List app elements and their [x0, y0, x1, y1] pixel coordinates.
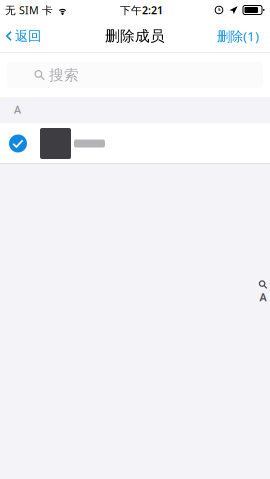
button[interactable]: 返回 [0, 20, 49, 52]
staticText: 下午2:21 [120, 3, 163, 17]
staticText: A [14, 102, 21, 117]
button[interactable]: A [257, 293, 269, 301]
button[interactable]: 搜索 [7, 62, 263, 88]
staticText: 删除(1) [217, 27, 259, 45]
staticText: 删除成员 [105, 27, 165, 45]
button[interactable] [0, 123, 270, 163]
staticText: 返回 [15, 28, 41, 44]
button[interactable]: Search index [257, 280, 269, 289]
staticText: 搜索 [49, 66, 79, 84]
staticText: 无 SIM 卡 [5, 3, 53, 17]
staticText: A [259, 290, 266, 304]
button[interactable]: 删除(1) [206, 20, 270, 52]
